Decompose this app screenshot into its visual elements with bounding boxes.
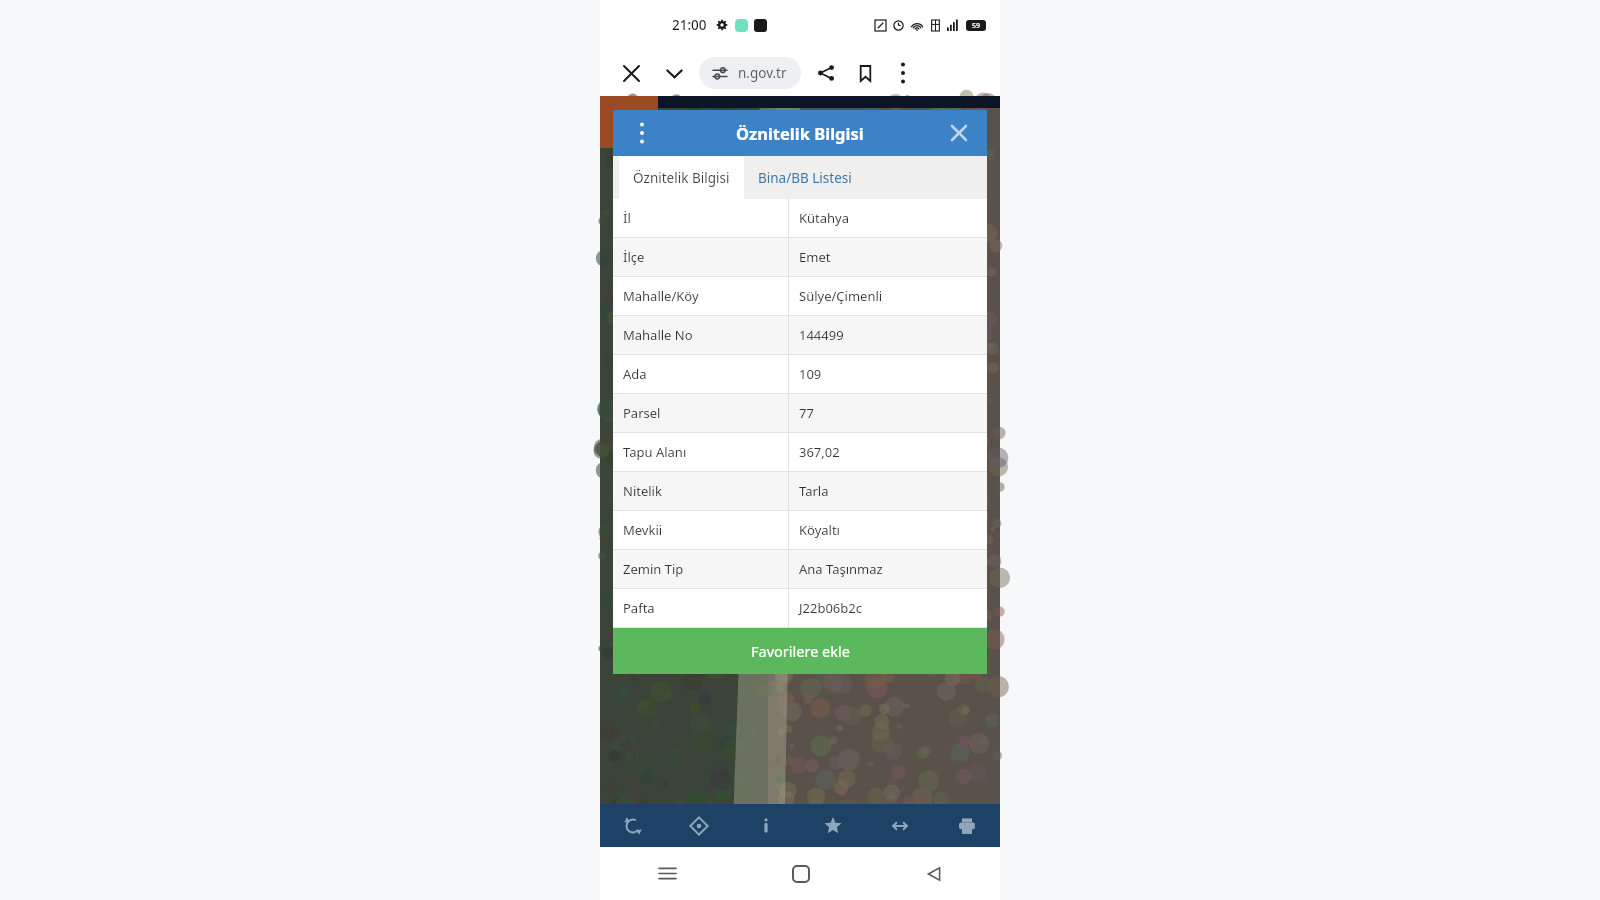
button[interactable]: Expand [659,58,689,88]
staticText: Tapu Alanı [623,443,687,461]
staticText: 77 [799,404,814,422]
staticText: 367,02 [799,443,840,461]
button[interactable]: Close dialog [943,117,975,149]
staticText: Mevkii [623,521,663,539]
button[interactable]: Nitelik [613,472,987,510]
staticText: Mahalle No [623,326,693,344]
staticText: İlçe [623,248,645,266]
button[interactable]: Recents [600,847,734,900]
staticText: Favorilere ekle [751,641,850,661]
staticText: Bina/BB Listesi [758,169,852,187]
button[interactable]: Mahalle/Köy [613,277,987,315]
button[interactable]: Refresh [600,804,666,847]
staticText: Öznitelik Bilgisi [736,122,864,144]
button[interactable]: n.gov.tr [699,57,801,89]
button[interactable]: Ada [613,355,987,393]
staticText: Nitelik [623,482,662,500]
button[interactable]: Favorites [799,804,866,847]
button[interactable]: Öznitelik Bilgisi [619,156,744,199]
staticText: 109 [799,365,822,383]
button[interactable]: More options [889,59,917,87]
button[interactable]: Bookmark [850,58,880,88]
staticText: Mahalle/Köy [623,287,699,305]
button[interactable]: Parsel [613,394,987,432]
button[interactable]: Menu [625,116,659,150]
staticText: İl [623,209,631,227]
button[interactable]: Info [732,804,799,847]
staticText: Pafta [623,599,655,617]
staticText: 144499 [799,326,844,344]
button[interactable]: Pafta [613,589,987,627]
staticText: Köyaltı [799,521,840,539]
staticText: Emet [799,248,831,266]
button[interactable]: Back [867,847,1000,900]
staticText: Zemin Tip [623,560,684,578]
button[interactable]: Home [734,847,867,900]
staticText: Ada [623,365,647,383]
button[interactable]: Share [811,58,841,88]
staticText: Öznitelik Bilgisi [633,169,730,187]
staticText: Sülye/Çimenli [799,287,883,305]
button[interactable]: Favorilere ekle [613,628,987,674]
button[interactable]: Tapu Alanı [613,433,987,471]
button[interactable]: İlçe [613,238,987,276]
staticText: 21:00 [672,16,707,34]
staticText: Kütahya [799,209,850,227]
staticText: J22b06b2c [799,599,862,617]
staticText: Ana Taşınmaz [799,560,883,578]
button[interactable]: Locate [666,804,732,847]
button[interactable]: İl [613,199,987,237]
button[interactable]: Bina/BB Listesi [744,156,866,199]
button[interactable]: Mevkii [613,511,987,549]
staticText: Tarla [799,482,829,500]
button[interactable]: Measure [866,804,933,847]
staticText: 59 [972,21,981,31]
button[interactable]: Mahalle No [613,316,987,354]
button[interactable]: Zemin Tip [613,550,987,588]
staticText: Parsel [623,404,661,422]
button[interactable]: Close [616,58,646,88]
button[interactable]: Print [933,804,1000,847]
staticText: n.gov.tr [738,64,787,82]
